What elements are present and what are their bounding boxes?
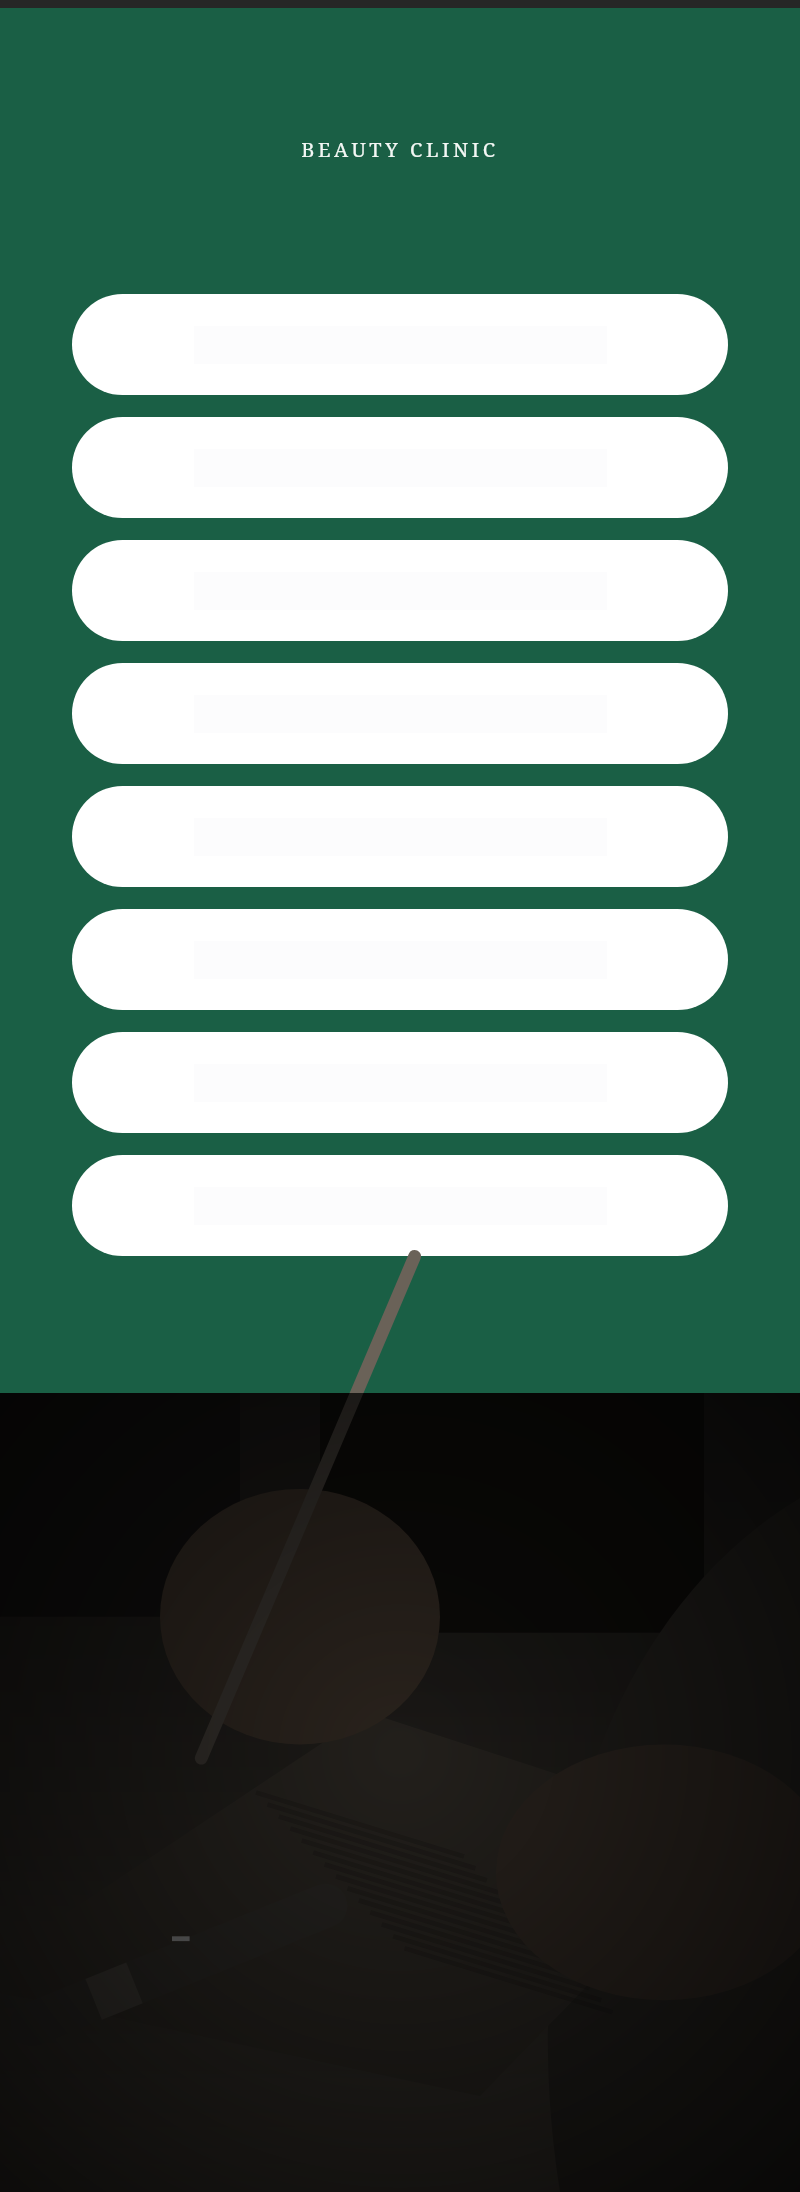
button[interactable]: Service option 3 xyxy=(72,540,728,641)
button[interactable]: Service option 2 xyxy=(72,417,728,518)
button[interactable]: Service option 4 xyxy=(72,663,728,764)
button[interactable]: Service option 8 xyxy=(72,1155,728,1256)
button[interactable]: Service option 1 xyxy=(72,294,728,395)
button[interactable]: Service option 5 xyxy=(72,786,728,887)
button[interactable]: Service option 7 xyxy=(72,1032,728,1133)
staticText: BEAUTY CLINIC xyxy=(0,136,800,163)
button[interactable]: Service option 6 xyxy=(72,909,728,1010)
